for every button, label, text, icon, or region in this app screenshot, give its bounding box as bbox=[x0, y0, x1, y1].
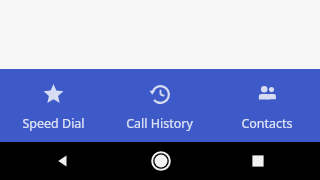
button[interactable]: Home bbox=[112, 142, 209, 180]
button[interactable]: Speed Dial bbox=[0, 69, 106, 142]
button[interactable]: Contacts bbox=[213, 69, 320, 142]
button[interactable]: Call History bbox=[106, 69, 213, 142]
button[interactable]: Recents bbox=[209, 142, 306, 180]
staticText: Contacts bbox=[241, 115, 293, 132]
button[interactable]: Back bbox=[14, 142, 112, 180]
staticText: Speed Dial bbox=[22, 115, 85, 132]
staticText: Call History bbox=[126, 115, 193, 132]
